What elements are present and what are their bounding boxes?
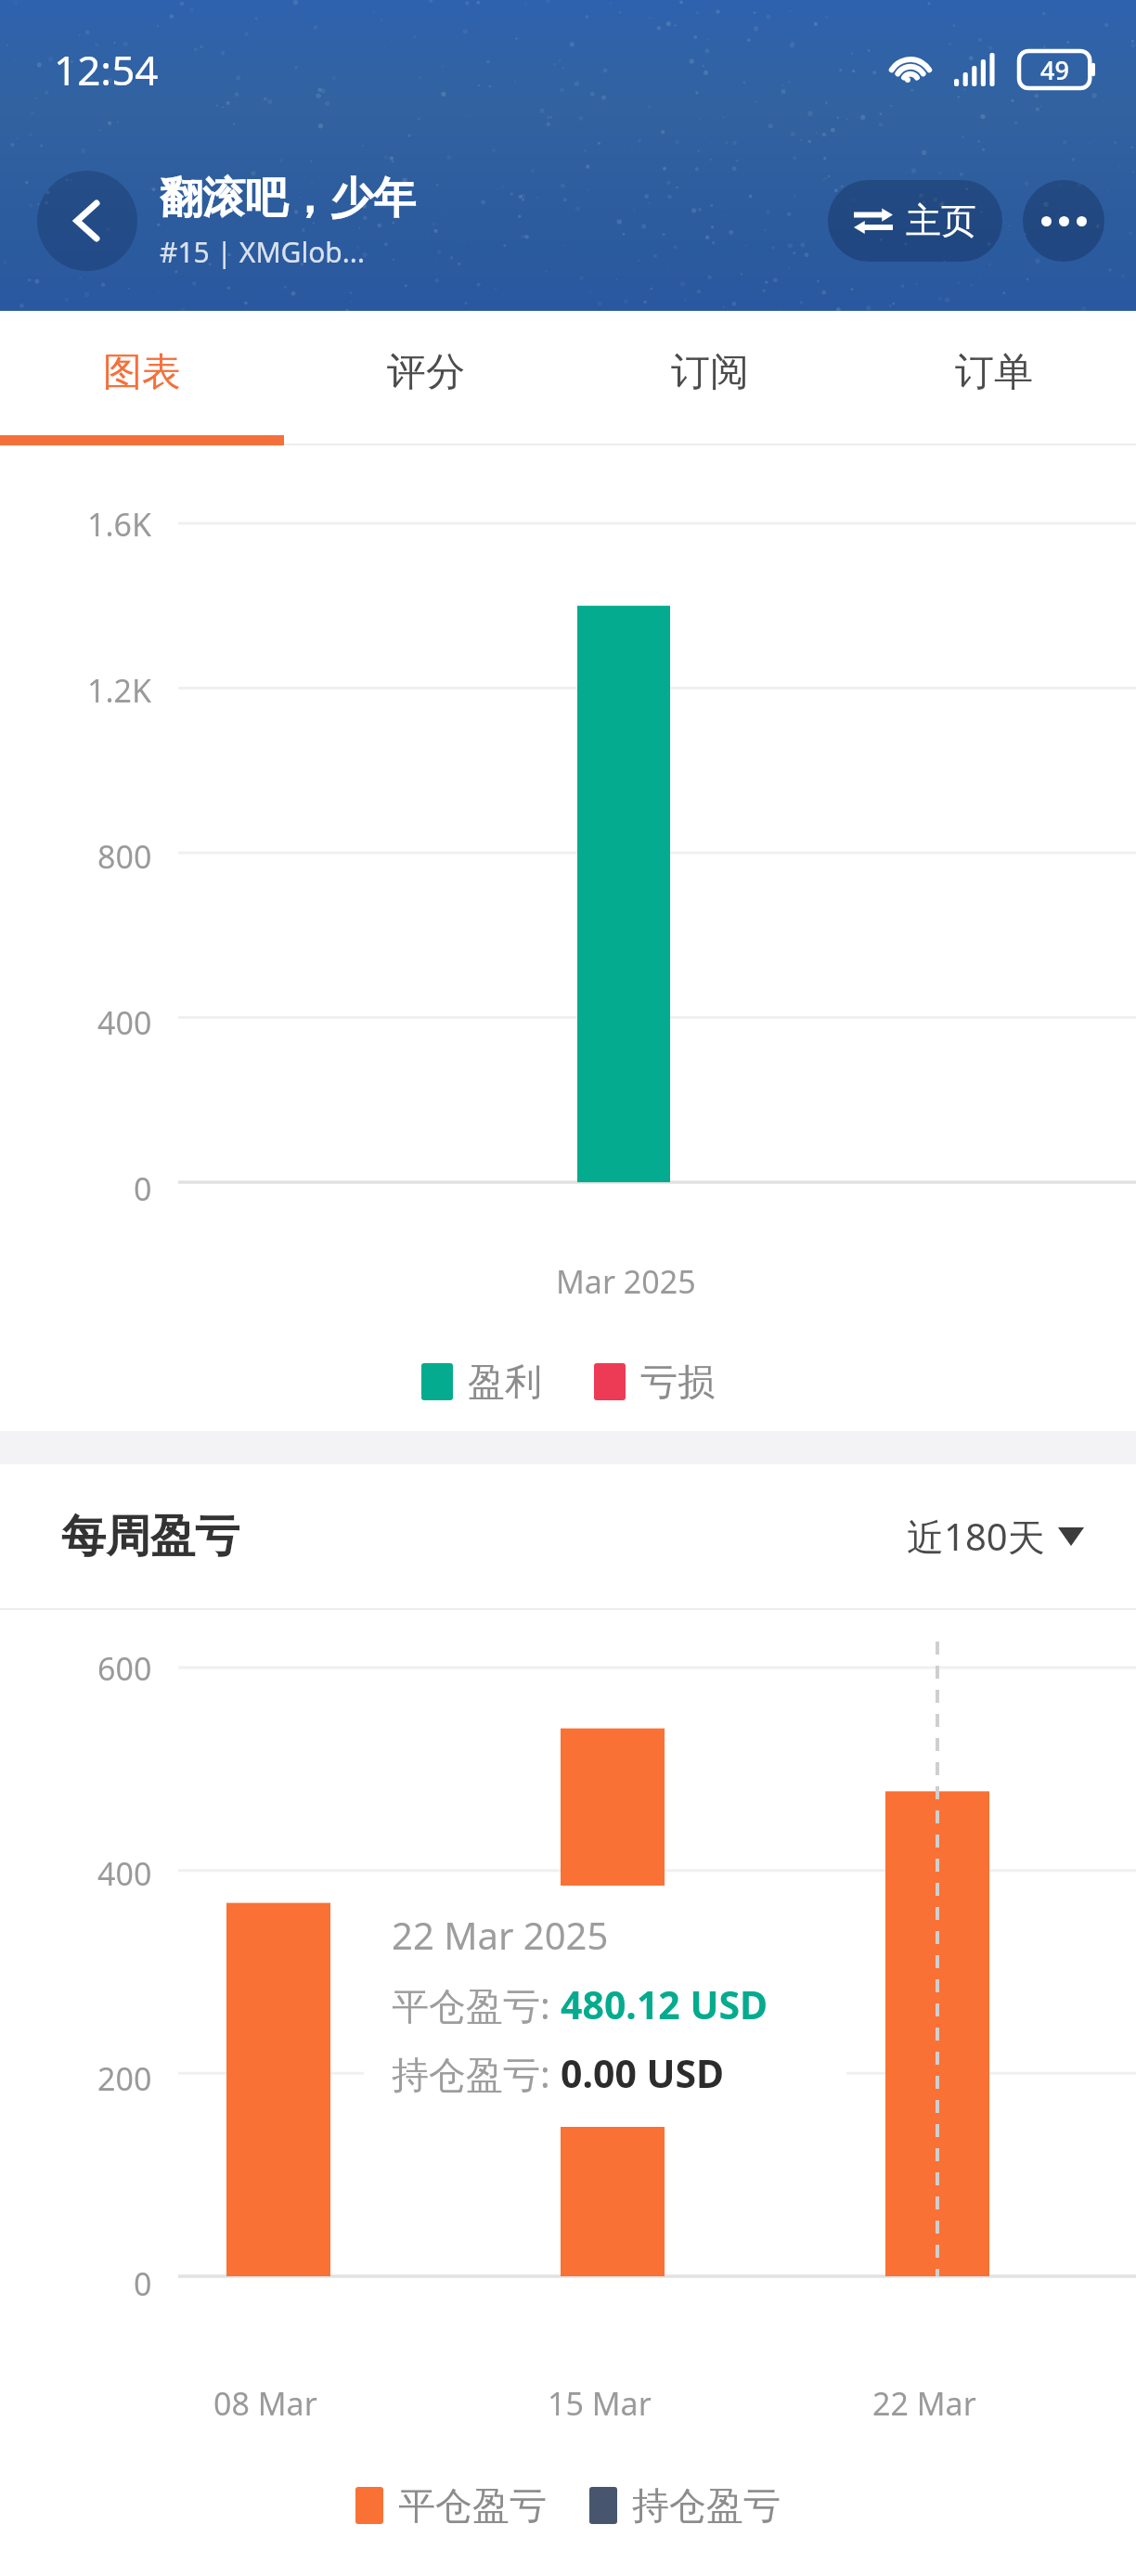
- staticText: 22 Mar 2025: [392, 1910, 609, 1960]
- staticText: 亏损: [640, 1359, 715, 1405]
- staticText: 400: [97, 1852, 152, 1895]
- staticText: 12:54: [54, 42, 159, 97]
- staticText: 22 Mar: [872, 2382, 976, 2425]
- staticText: 1.2K: [87, 669, 152, 712]
- staticText: 49: [1040, 53, 1069, 87]
- button[interactable]: 订阅: [568, 311, 852, 434]
- button[interactable]: 盈利: [421, 1359, 542, 1405]
- staticText: 1.6K: [87, 503, 152, 546]
- staticText: 平仓盈亏: [398, 2482, 547, 2529]
- button[interactable]: 持仓盈亏: [589, 2482, 781, 2529]
- button[interactable]: 亏损: [594, 1359, 715, 1405]
- staticText: 400: [97, 1001, 152, 1044]
- staticText: Mar 2025: [556, 1260, 696, 1303]
- button[interactable]: 近180天: [907, 1511, 1084, 1562]
- staticText: 600: [97, 1647, 152, 1690]
- staticText: 480.12 USD: [561, 1978, 768, 2030]
- staticText: 近180天: [907, 1511, 1045, 1562]
- staticText: #15 | XMGlob...: [160, 233, 365, 271]
- staticText: 每周盈亏: [61, 1509, 239, 1565]
- staticText: 0.00 USD: [561, 2047, 725, 2099]
- staticText: 翻滚吧，少年: [160, 172, 416, 225]
- button[interactable]: 评分: [284, 311, 568, 434]
- staticText: 持仓盈亏: [632, 2482, 781, 2529]
- button[interactable]: 图表: [0, 311, 284, 434]
- button[interactable]: Back: [37, 171, 137, 271]
- staticText: 持仓盈亏:: [392, 2048, 561, 2099]
- staticText: 08 Mar: [213, 2382, 317, 2425]
- staticText: 15 Mar: [548, 2382, 652, 2425]
- staticText: 平仓盈亏:: [392, 1979, 561, 2030]
- staticText: 800: [97, 835, 152, 878]
- staticText: 0: [134, 1167, 152, 1210]
- staticText: 图表: [103, 348, 181, 397]
- button[interactable]: 订单: [852, 311, 1136, 434]
- staticText: 主页: [906, 199, 976, 243]
- button[interactable]: 平仓盈亏: [355, 2482, 547, 2529]
- staticText: 评分: [387, 348, 465, 397]
- staticText: 0: [134, 2262, 152, 2305]
- button[interactable]: More options: [1023, 180, 1104, 262]
- staticText: 订阅: [671, 348, 749, 397]
- staticText: 盈利: [468, 1359, 542, 1405]
- button[interactable]: 主页: [828, 180, 1002, 262]
- staticText: 200: [97, 2057, 152, 2100]
- staticText: 订单: [955, 348, 1033, 397]
